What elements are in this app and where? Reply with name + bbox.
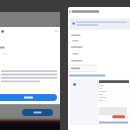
button[interactable]: Close — [53, 27, 60, 35]
button[interactable] — [22, 109, 53, 116]
button[interactable] — [0, 94, 57, 101]
button[interactable]: Open attachment link — [69, 72, 129, 79]
button[interactable]: Back — [0, 27, 8, 35]
